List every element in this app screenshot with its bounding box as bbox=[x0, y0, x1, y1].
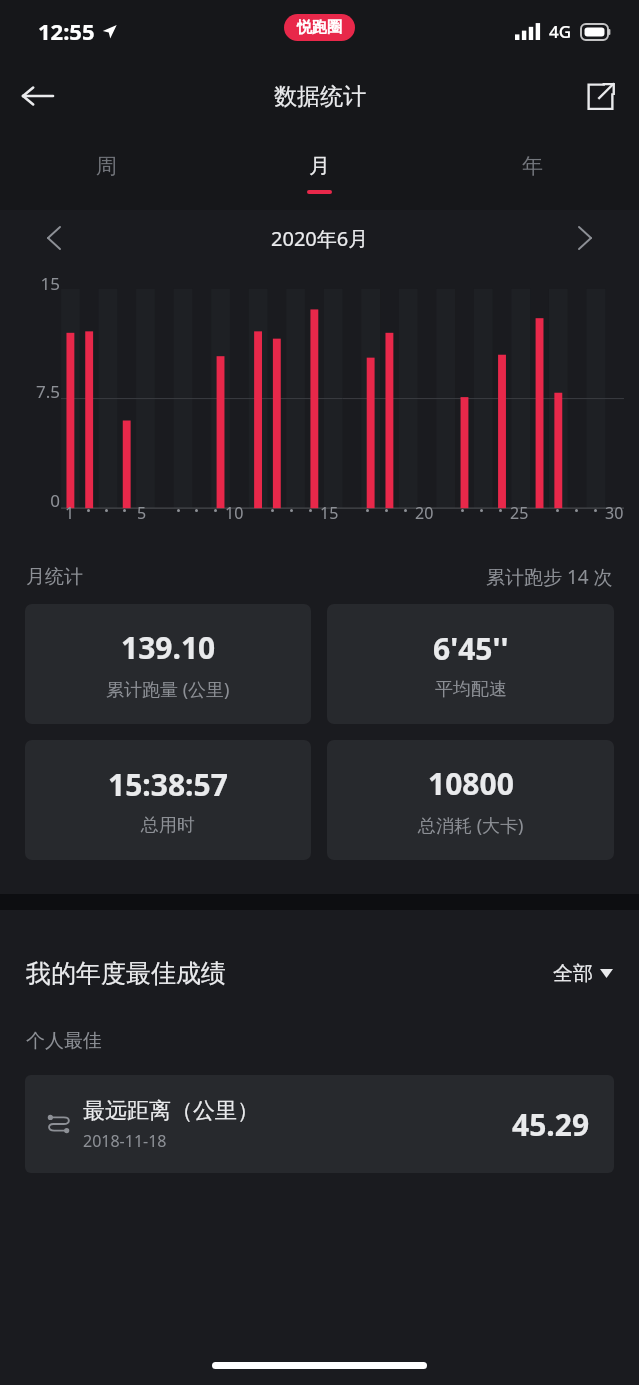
button[interactable]: 15:38:57 bbox=[25, 740, 311, 860]
staticText: 总用时 bbox=[141, 814, 195, 837]
button[interactable]: Share bbox=[573, 69, 627, 123]
button[interactable]: 月 bbox=[213, 130, 426, 210]
staticText: 月统计 bbox=[26, 565, 83, 589]
staticText: 30 bbox=[605, 502, 624, 524]
staticText: 2018-11-18 bbox=[83, 1130, 167, 1152]
staticText: 4G bbox=[549, 20, 572, 43]
staticText: 数据统计 bbox=[274, 82, 366, 111]
staticText: 15:38:57 bbox=[108, 764, 228, 805]
staticText: 个人最佳 bbox=[26, 1029, 102, 1053]
button[interactable]: Next month bbox=[563, 216, 607, 260]
staticText: 10800 bbox=[428, 763, 514, 804]
staticText: 2020年6月 bbox=[271, 225, 369, 252]
button[interactable]: 6'45'' bbox=[327, 604, 614, 724]
staticText: 全部 bbox=[553, 961, 593, 986]
button[interactable]: 周 bbox=[0, 130, 213, 210]
button[interactable]: Back bbox=[10, 68, 66, 124]
staticText: 45.29 bbox=[512, 1104, 590, 1145]
staticText: 周 bbox=[96, 153, 117, 179]
staticText: 20 bbox=[415, 502, 434, 524]
button[interactable]: 全部 bbox=[553, 961, 613, 986]
button[interactable]: 年 bbox=[426, 130, 639, 210]
button[interactable]: Previous month bbox=[32, 216, 76, 260]
staticText: 最远距离（公里） bbox=[83, 1097, 259, 1125]
staticText: 累计跑步 14 次 bbox=[486, 564, 613, 590]
staticText: 年 bbox=[522, 153, 543, 179]
staticText: 累计跑量 (公里) bbox=[106, 677, 230, 702]
staticText: 悦跑圈 bbox=[297, 18, 342, 37]
staticText: 139.10 bbox=[121, 627, 216, 668]
staticText: 15 bbox=[18, 272, 60, 295]
staticText: 我的年度最佳成绩 bbox=[26, 958, 226, 989]
staticText: 总消耗 (大卡) bbox=[418, 813, 524, 838]
button[interactable]: 10800 bbox=[327, 740, 614, 860]
staticText: 7.5 bbox=[18, 380, 60, 403]
staticText: 15 bbox=[320, 502, 339, 524]
staticText: 0 bbox=[18, 489, 60, 512]
staticText: 6'45'' bbox=[433, 628, 509, 669]
button[interactable]: 139.10 bbox=[25, 604, 311, 724]
staticText: 25 bbox=[510, 502, 529, 524]
staticText: 10 bbox=[225, 502, 244, 524]
button[interactable]: 最远距离（公里） bbox=[25, 1075, 614, 1173]
staticText: 1 bbox=[65, 502, 75, 524]
staticText: 月 bbox=[309, 153, 330, 179]
staticText: 平均配速 bbox=[435, 678, 507, 701]
staticText: 5 bbox=[137, 502, 147, 524]
staticText: 12:55 bbox=[38, 16, 95, 46]
